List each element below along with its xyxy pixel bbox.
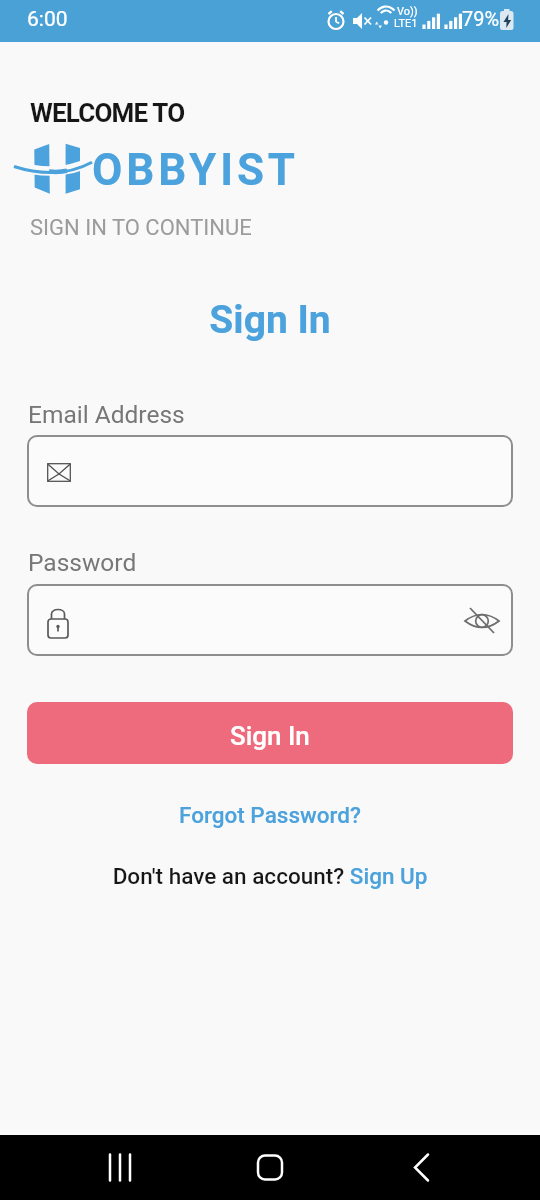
staticText: 79% xyxy=(462,7,500,30)
staticText: Don't have an account? Sign Up xyxy=(0,863,540,889)
staticText: LTE1 xyxy=(394,17,418,30)
staticText: 6:00 xyxy=(27,7,68,32)
staticText: Email Address xyxy=(28,400,185,429)
staticText: Password xyxy=(28,548,137,577)
staticText: Sign In xyxy=(230,721,310,751)
staticText: WELCOME TO xyxy=(30,98,185,128)
staticText: SIGN IN TO CONTINUE xyxy=(30,215,252,241)
staticText: Sign In xyxy=(0,297,540,343)
staticText: Forgot Password? xyxy=(0,802,540,828)
staticText: OBBYIST xyxy=(92,144,299,196)
staticText: Vo)) xyxy=(397,5,418,18)
